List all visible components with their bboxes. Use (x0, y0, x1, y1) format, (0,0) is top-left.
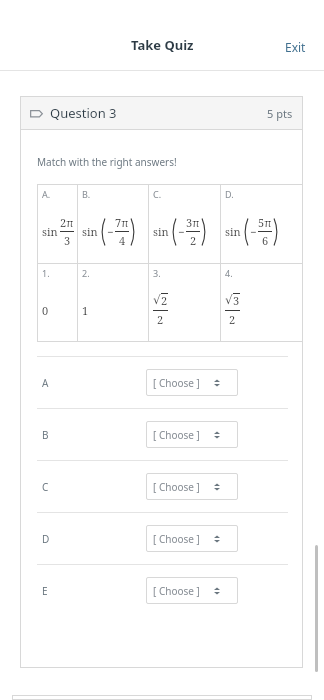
staticText: 3π (186, 215, 200, 230)
button[interactable]: A (20, 357, 303, 408)
staticText: 5 pts (267, 106, 293, 121)
other: Open choices (212, 378, 222, 388)
button[interactable]: C (20, 461, 303, 512)
staticText: 2. (82, 267, 90, 279)
staticText: [ Choose ] (153, 428, 200, 442)
staticText: Match with the right answers! (37, 155, 177, 169)
button[interactable]: [ Choose ] (146, 421, 238, 448)
button[interactable]: [ Choose ] (146, 525, 238, 552)
staticText: B. (82, 188, 91, 200)
staticText: 3 (233, 293, 240, 308)
staticText: √ (153, 293, 161, 307)
staticText: Question 3 (50, 104, 117, 122)
other: Open choices (212, 482, 222, 492)
staticText: [ Choose ] (153, 532, 200, 546)
button[interactable]: D (20, 513, 303, 564)
button[interactable]: Exit (281, 35, 310, 59)
staticText: A (42, 376, 49, 390)
staticText: 7π (115, 215, 129, 230)
staticText: [ Choose ] (153, 584, 200, 598)
staticText: 0 (42, 303, 49, 318)
staticText: B (42, 428, 49, 442)
staticText: 5π (258, 215, 272, 230)
staticText: 2 (161, 293, 168, 308)
staticText: C (42, 480, 49, 494)
staticText: 4 (119, 233, 126, 248)
other: Open choices (212, 534, 222, 544)
staticText: 2 (157, 312, 164, 327)
staticText: − (178, 224, 185, 239)
staticText: sin (82, 224, 98, 239)
staticText: − (250, 224, 257, 239)
staticText: D (42, 532, 50, 546)
staticText: √ (225, 293, 233, 307)
staticText: 4. (225, 267, 233, 279)
button[interactable]: B (20, 409, 303, 460)
staticText: 1. (42, 267, 50, 279)
staticText: 2 (229, 312, 236, 327)
staticText: − (107, 224, 114, 239)
staticText: Exit (285, 39, 306, 55)
staticText: 1 (82, 303, 89, 318)
staticText: sin (42, 224, 58, 239)
staticText: E (42, 584, 48, 598)
staticText: 3 (64, 233, 71, 248)
button[interactable]: [ Choose ] (146, 473, 238, 500)
staticText: C. (153, 188, 162, 200)
staticText: [ Choose ] (153, 480, 200, 494)
button[interactable]: [ Choose ] (146, 369, 238, 396)
button[interactable]: E (20, 565, 303, 616)
staticText: A. (42, 188, 51, 200)
other: Open choices (212, 430, 222, 440)
staticText: D. (225, 188, 234, 200)
button[interactable]: [ Choose ] (146, 577, 238, 604)
staticText: 6 (262, 233, 269, 248)
other: Open choices (212, 586, 222, 596)
staticText: sin (225, 224, 241, 239)
staticText: 3. (153, 267, 161, 279)
staticText: sin (153, 224, 169, 239)
staticText: 2π (60, 215, 74, 230)
staticText: [ Choose ] (153, 376, 200, 390)
staticText: Take Quiz (131, 36, 194, 54)
staticText: 2 (190, 233, 197, 248)
